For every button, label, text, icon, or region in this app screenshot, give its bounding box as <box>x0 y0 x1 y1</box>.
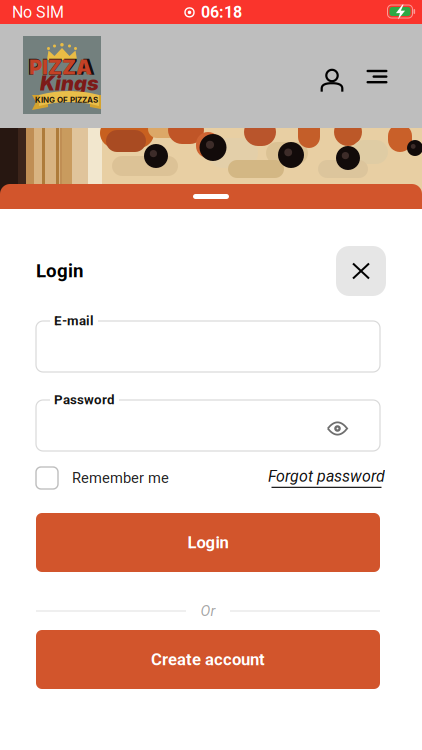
button[interactable]: Forgot password <box>268 467 385 488</box>
staticText: Password <box>54 392 115 408</box>
staticText: Create account <box>151 650 265 669</box>
button[interactable]: Create account <box>36 630 380 689</box>
button[interactable]: Menu <box>358 52 396 90</box>
button[interactable]: Remember me <box>36 465 169 491</box>
staticText: No SIM <box>12 3 64 22</box>
staticText: E-mail <box>54 313 94 329</box>
button[interactable]: Close <box>336 246 386 296</box>
staticText: Forgot password <box>268 467 385 486</box>
staticText: PIZZA <box>28 54 95 80</box>
staticText: Kings <box>40 71 99 95</box>
button[interactable]: Login <box>36 513 380 572</box>
staticText: Remember me <box>72 469 169 487</box>
staticText: Or <box>200 602 215 620</box>
staticText: Login <box>187 533 228 552</box>
staticText: 06:18 <box>201 3 242 22</box>
staticText: PIZZA <box>29 55 92 79</box>
staticText: KING OF PIZZAS <box>35 95 98 105</box>
button[interactable]: Account <box>313 56 351 94</box>
staticText: Login <box>36 260 83 282</box>
